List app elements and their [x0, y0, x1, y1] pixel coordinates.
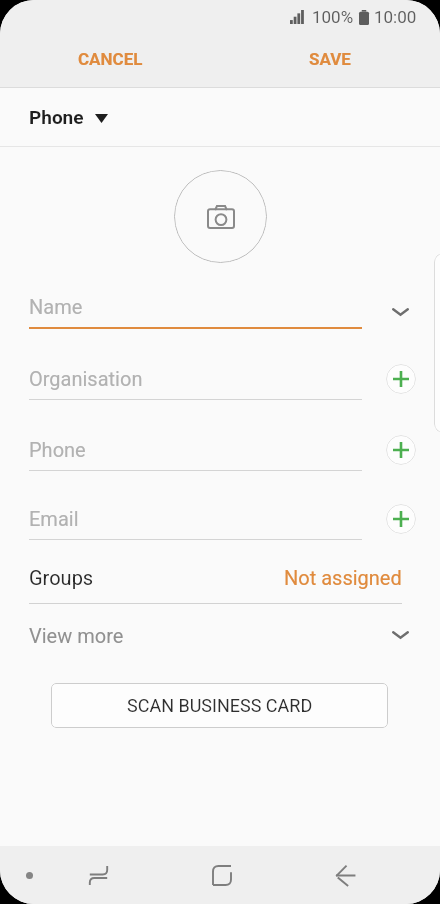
- button[interactable]: SCAN BUSINESS CARD: [51, 683, 388, 728]
- staticText: SAVE: [309, 49, 351, 69]
- staticText: Not assigned: [284, 566, 402, 589]
- staticText: Email: [29, 507, 79, 530]
- button[interactable]: Phone: [0, 425, 440, 489]
- button[interactable]: Back: [326, 856, 365, 895]
- button[interactable]: SAVE: [220, 36, 440, 87]
- button[interactable]: Expand name fields: [383, 294, 418, 329]
- staticText: Phone: [29, 106, 84, 128]
- staticText: View more: [29, 624, 124, 647]
- button[interactable]: Recents: [79, 856, 118, 895]
- button[interactable]: Add Email: [386, 504, 416, 534]
- staticText: 100%: [312, 7, 354, 27]
- staticText: Groups: [29, 566, 94, 589]
- button[interactable]: View more: [0, 610, 440, 660]
- button[interactable]: Add Phone: [386, 435, 416, 465]
- button[interactable]: Phone: [0, 88, 440, 146]
- button[interactable]: Add Organisation: [386, 364, 416, 394]
- staticText: 10:00: [374, 7, 417, 27]
- staticText: Organisation: [29, 367, 143, 390]
- staticText: CANCEL: [78, 49, 143, 69]
- button[interactable]: Home: [202, 856, 241, 895]
- staticText: SCAN BUSINESS CARD: [127, 695, 313, 716]
- button[interactable]: CANCEL: [0, 36, 220, 87]
- staticText: Name: [29, 295, 83, 318]
- button[interactable]: Add photo: [174, 170, 267, 263]
- button[interactable]: Name: [0, 282, 440, 346]
- button[interactable]: Organisation: [0, 354, 440, 418]
- button[interactable]: Groups: [0, 552, 440, 603]
- button[interactable]: Show more fields: [383, 617, 418, 652]
- button[interactable]: Email: [0, 494, 440, 558]
- staticText: Phone: [29, 438, 86, 461]
